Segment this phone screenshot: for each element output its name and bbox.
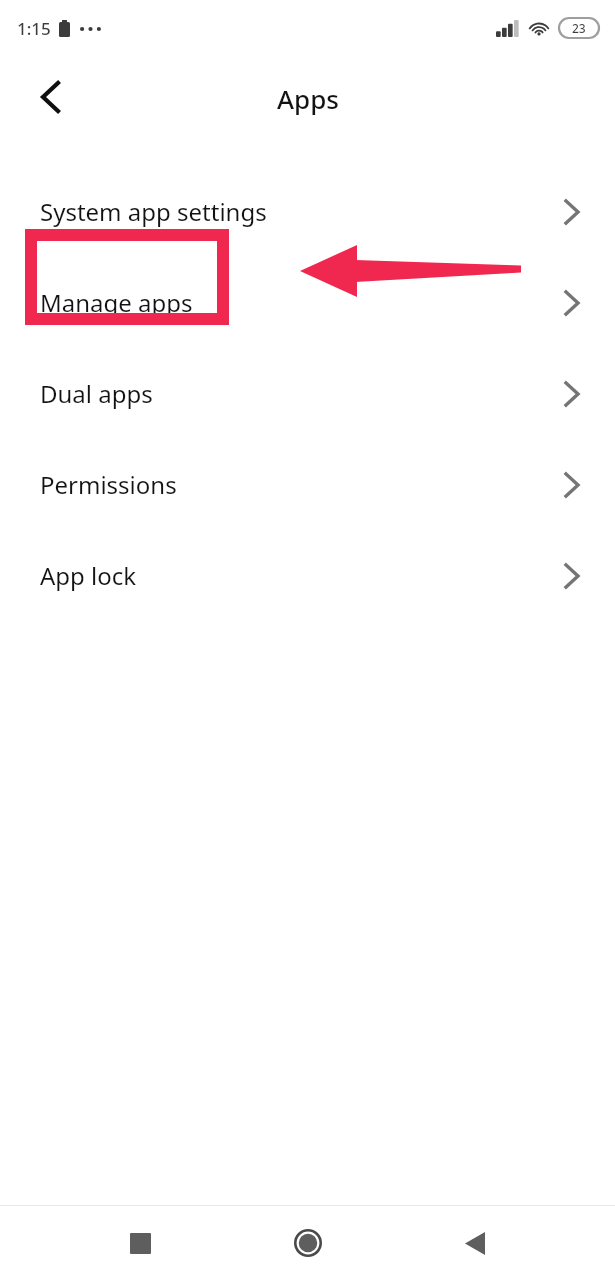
button[interactable]: Recent apps — [112, 1215, 168, 1271]
button[interactable]: Back — [22, 69, 78, 125]
staticText: Dual apps — [40, 377, 153, 410]
button[interactable]: Dual apps — [0, 348, 615, 439]
staticText: Permissions — [40, 468, 177, 501]
staticText: App lock — [40, 559, 137, 592]
staticText: 23 — [572, 20, 586, 36]
staticText: 1:15 — [17, 17, 51, 40]
button[interactable]: App lock — [0, 530, 615, 621]
staticText: Apps — [277, 81, 339, 116]
staticText: System app settings — [40, 195, 267, 228]
button[interactable]: Home — [280, 1215, 336, 1271]
button[interactable]: Permissions — [0, 439, 615, 530]
button[interactable]: Back — [447, 1215, 503, 1271]
button[interactable]: Manage apps — [0, 257, 615, 348]
staticText: Manage apps — [40, 286, 193, 319]
button[interactable]: System app settings — [0, 166, 615, 257]
